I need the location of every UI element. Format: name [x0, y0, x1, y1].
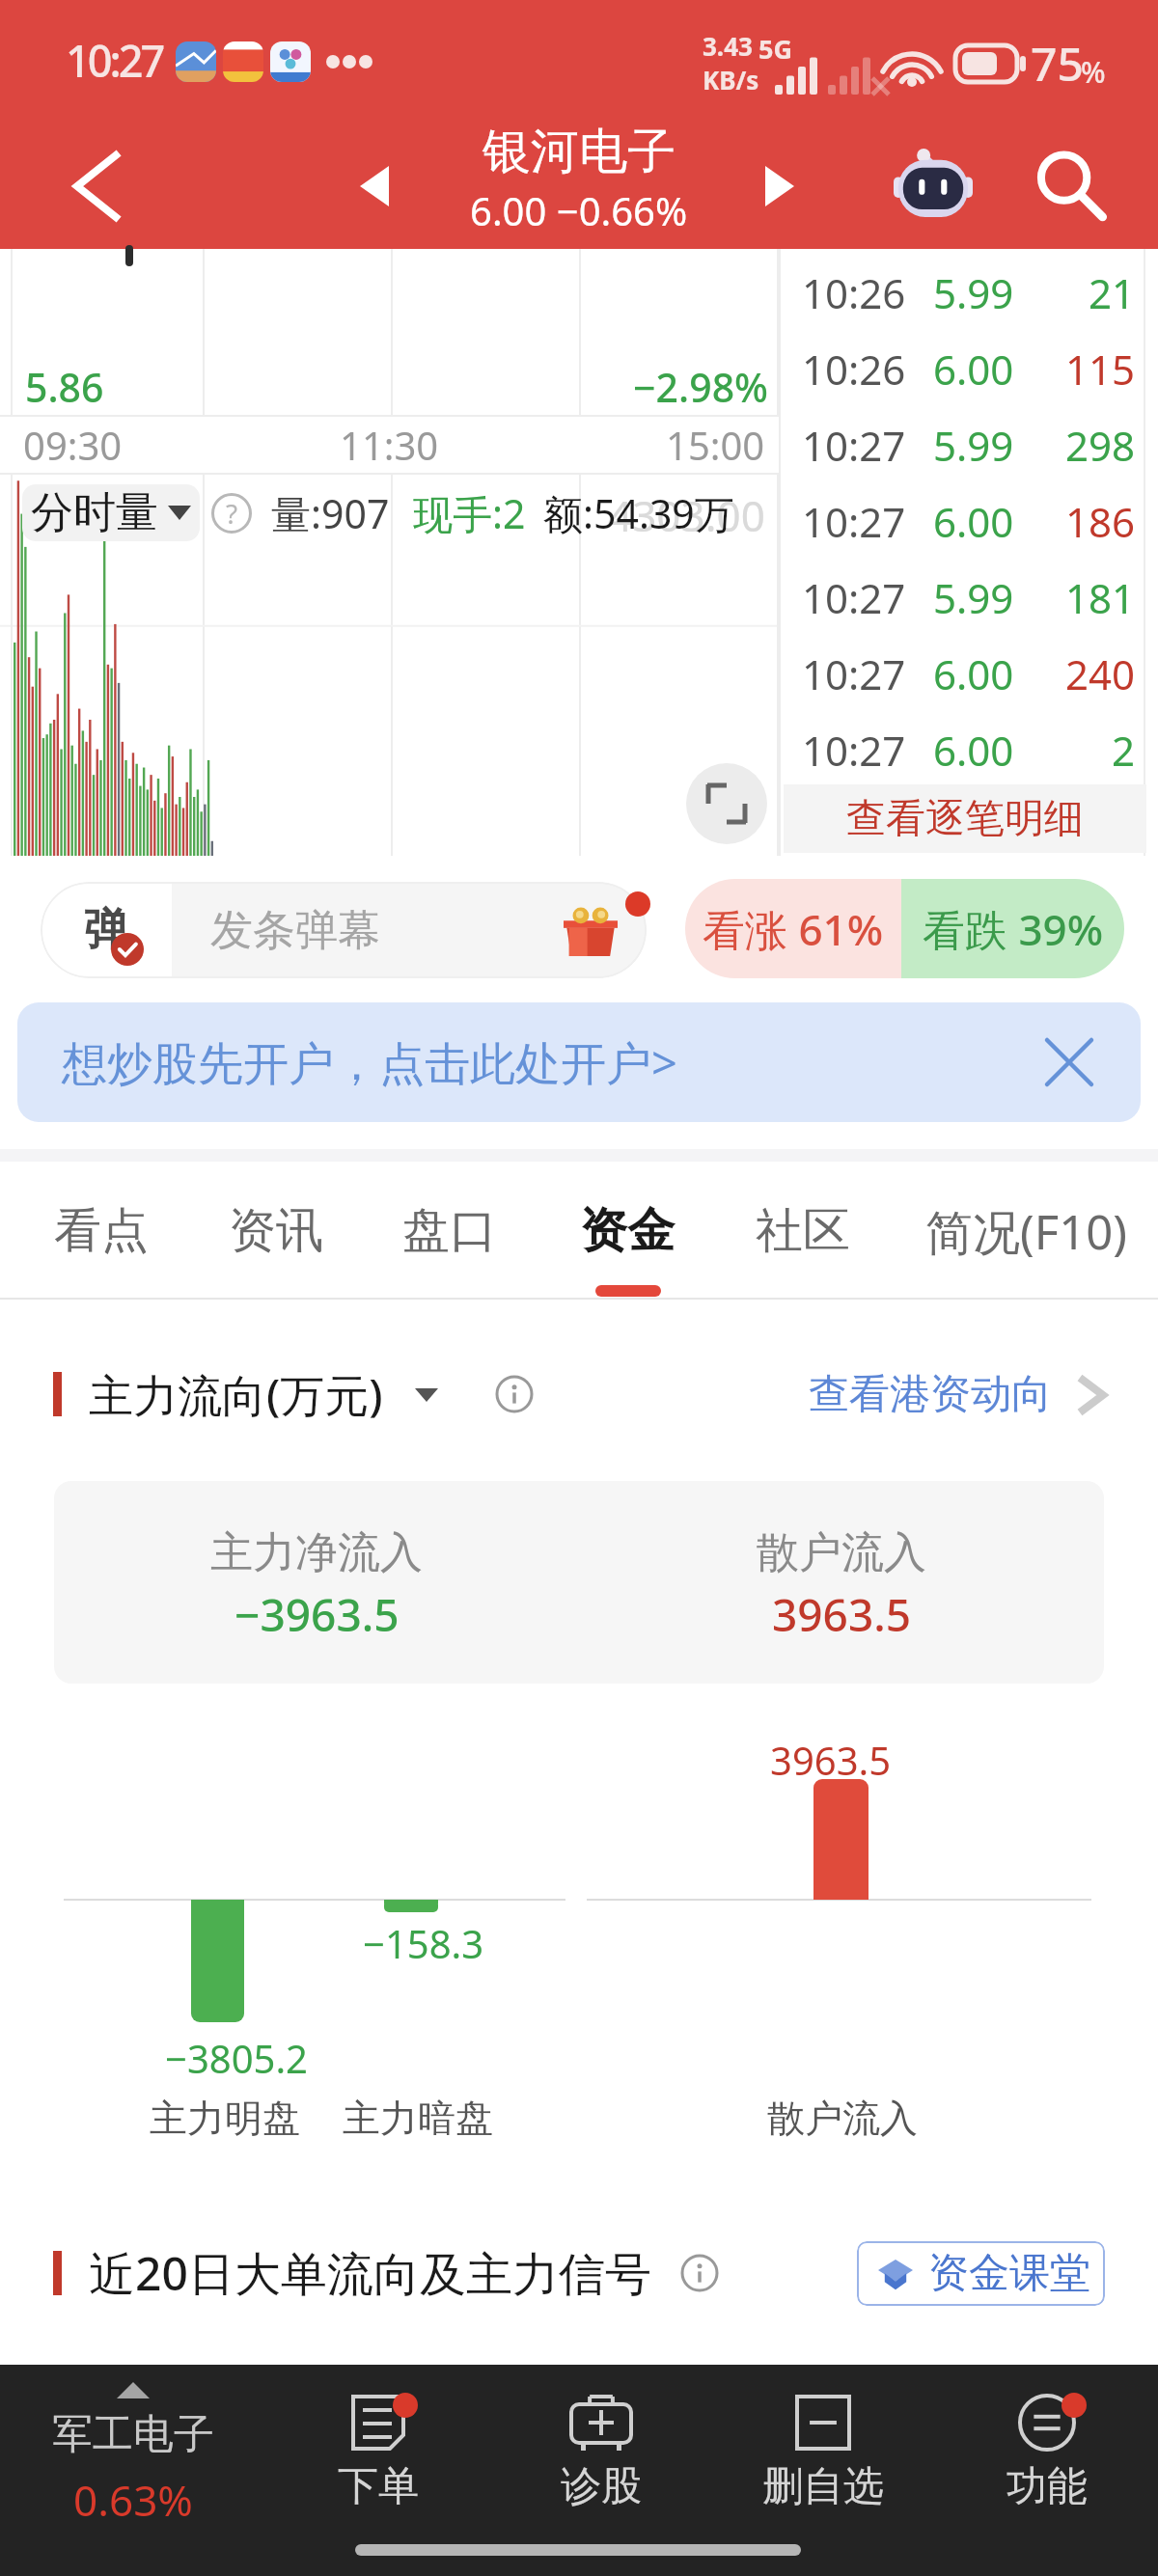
button[interactable]: Help — [211, 493, 252, 534]
staticText: 看点 — [54, 1201, 149, 1261]
staticText: 简况(F10) — [925, 1199, 1127, 1264]
staticText: 3963.5 — [770, 1734, 892, 1786]
button[interactable]: 功能 — [941, 2365, 1153, 2576]
button[interactable]: 删自选 — [717, 2365, 929, 2576]
staticText: 0.63% — [73, 2471, 193, 2529]
button[interactable]: 资金课堂 — [857, 2241, 1105, 2306]
button[interactable]: 军工电子 — [17, 2365, 249, 2576]
button[interactable]: 10:27 — [779, 712, 1158, 788]
staticText: 5.86 — [25, 360, 104, 414]
button[interactable]: 社区 — [720, 1161, 886, 1274]
button[interactable]: 想炒股先开户，点击此处开户> — [17, 1002, 1141, 1122]
button[interactable]: 诊股 — [495, 2365, 707, 2576]
button[interactable]: 10:27 — [779, 636, 1158, 712]
staticText: 额:54.39万 — [543, 486, 734, 540]
staticText: 298 — [1005, 418, 1135, 473]
staticText: 想炒股先开户，点击此处开户> — [62, 1031, 677, 1093]
staticText: 量:907 — [271, 486, 390, 540]
button[interactable]: 看跌 39% — [901, 879, 1124, 978]
button[interactable]: Close — [1027, 1020, 1112, 1105]
staticText: 6.00 — [933, 723, 1039, 778]
staticText: 240 — [1005, 646, 1135, 701]
staticText: 10:26 — [802, 265, 945, 320]
staticText: 6.00 — [933, 646, 1039, 701]
staticText: 186 — [1005, 494, 1135, 549]
button[interactable]: Previous stock — [317, 123, 432, 249]
button[interactable]: 10:27 — [779, 560, 1158, 636]
staticText: 查看逐笔明细 — [846, 794, 1084, 844]
staticText: 社区 — [756, 1201, 850, 1261]
staticText: 看涨 61% — [703, 900, 884, 958]
staticText: 散户流入 — [767, 2095, 918, 2142]
staticText: 115 — [1005, 342, 1135, 397]
staticText: −3805.2 — [165, 2032, 308, 2084]
staticText: 盘口 — [402, 1201, 497, 1261]
button[interactable]: 简况(F10) — [896, 1161, 1156, 1274]
staticText: 10:27 — [66, 31, 163, 90]
staticText: 主力流向(万元) — [89, 1364, 383, 1425]
staticText: % — [1081, 52, 1106, 92]
staticText: 分时量 — [31, 486, 158, 539]
staticText: 散户流入 — [757, 1526, 926, 1579]
button[interactable]: Info — [664, 2240, 735, 2306]
staticText: 10:27 — [802, 646, 945, 701]
staticText: 功能 — [1006, 2461, 1088, 2512]
staticText: 现手:2 — [413, 486, 526, 540]
button[interactable]: 10:26 — [779, 331, 1158, 407]
button[interactable]: 分时量 — [22, 484, 200, 541]
button[interactable]: Fullscreen — [686, 763, 767, 844]
staticText: 5.99 — [933, 418, 1039, 473]
staticText: 主力明盘 — [150, 2095, 300, 2142]
staticText: 主力暗盘 — [343, 2095, 493, 2142]
staticText: 10:26 — [802, 342, 945, 397]
button[interactable]: 查看逐笔明细 — [784, 784, 1146, 853]
staticText: 15:00 — [666, 419, 765, 471]
button[interactable]: Back — [19, 123, 174, 249]
button[interactable]: 看涨 61% — [685, 879, 901, 978]
staticText: 10:27 — [802, 723, 945, 778]
button[interactable]: Search — [1004, 123, 1139, 249]
staticText: 4303.00 — [608, 486, 765, 544]
staticText: 军工电子 — [52, 2409, 214, 2460]
staticText: 6.00 — [933, 342, 1039, 397]
staticText: 近20日大单流向及主力信号 — [89, 2241, 651, 2305]
staticText: 2 — [1005, 723, 1135, 778]
button[interactable]: 10:27 — [779, 483, 1158, 560]
staticText: 11:30 — [340, 419, 439, 471]
staticText: −158.3 — [363, 1917, 484, 1969]
staticText: 181 — [1005, 570, 1135, 625]
staticText: 3.43 — [703, 29, 753, 63]
button[interactable]: Next stock — [722, 123, 838, 249]
staticText: 09:30 — [23, 419, 123, 471]
button[interactable]: 资讯 — [193, 1161, 359, 1274]
staticText: 银河电子 — [482, 122, 675, 182]
button[interactable]: 弹 — [41, 882, 647, 978]
button[interactable]: AI assistant — [866, 123, 1001, 249]
staticText: 删自选 — [762, 2461, 884, 2512]
staticText: 10:27 — [802, 418, 945, 473]
staticText: 主力净流入 — [210, 1526, 423, 1579]
button[interactable]: 10:27 — [779, 407, 1158, 483]
staticText: 弹 — [84, 902, 128, 958]
staticText: ? — [226, 495, 238, 532]
staticText: 21 — [1005, 265, 1135, 320]
staticText: 5.99 — [933, 265, 1039, 320]
button[interactable]: 资金 — [544, 1161, 710, 1274]
staticText: 10:27 — [802, 570, 945, 625]
button[interactable]: 下单 — [272, 2365, 484, 2576]
button[interactable]: 盘口 — [367, 1161, 533, 1274]
staticText: 诊股 — [561, 2461, 642, 2512]
staticText: 发条弹幕 — [210, 904, 380, 957]
staticText: 6.00 −0.66% — [470, 184, 688, 236]
staticText: 6.00 — [933, 494, 1039, 549]
staticText: KB/s — [703, 63, 759, 96]
button[interactable]: Info — [479, 1361, 550, 1427]
button[interactable]: 看点 — [18, 1161, 184, 1274]
staticText: −3963.5 — [234, 1584, 400, 1645]
staticText: −2.98% — [633, 360, 769, 414]
button[interactable]: 查看港资动向 — [809, 1369, 1106, 1420]
staticText: 看跌 39% — [923, 900, 1104, 958]
staticText: 资金 — [580, 1201, 675, 1261]
button[interactable]: 10:26 — [779, 255, 1158, 331]
staticText: 下单 — [338, 2461, 419, 2512]
